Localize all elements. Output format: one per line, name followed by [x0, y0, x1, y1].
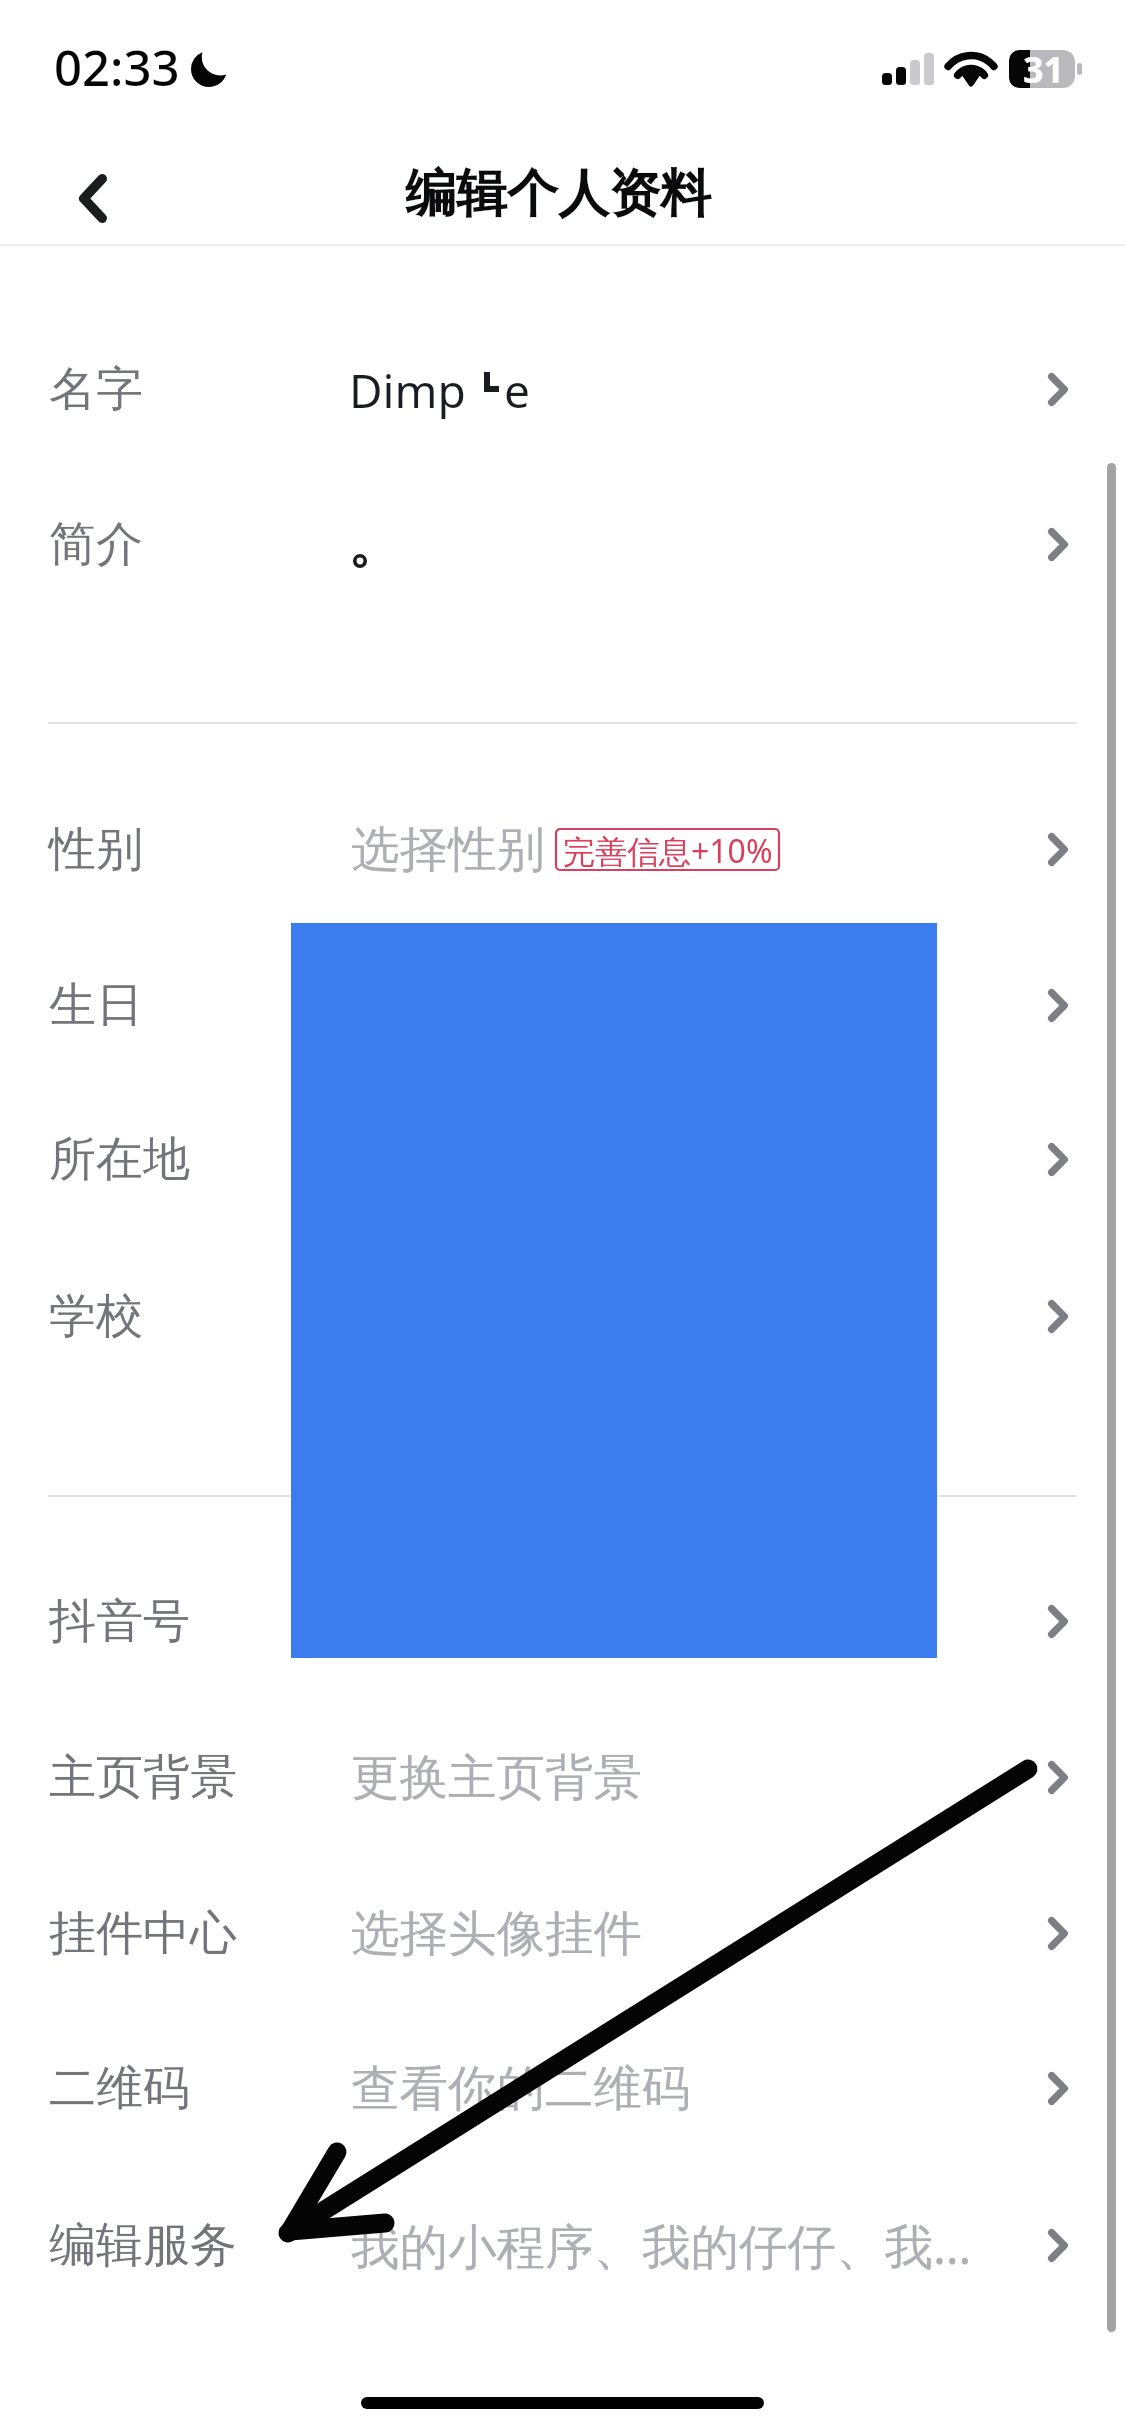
staticText: 我的小程序、我的仔仔、我… [351, 2212, 972, 2278]
staticText: 主页背景 [49, 1748, 237, 1807]
button[interactable]: 名字 [0, 321, 1125, 457]
button[interactable]: 学校 [0, 1248, 1125, 1384]
staticText: 31 [1023, 45, 1065, 83]
staticText: 02:33 [54, 34, 180, 101]
staticText: 编辑个人资料 [405, 162, 711, 226]
staticText: 完善信息+10% [563, 829, 773, 870]
button[interactable]: 挂件中心 [0, 1865, 1125, 2001]
staticText: 性别 [49, 820, 143, 879]
staticText: e [504, 359, 530, 422]
staticText: 编辑服务 [49, 2216, 237, 2275]
staticText: 生日 [49, 976, 143, 1035]
button[interactable]: 主页背景 [0, 1709, 1125, 1845]
button[interactable]: 二维码 [0, 2020, 1125, 2156]
staticText: 选择性别 [351, 819, 545, 880]
button[interactable]: 编辑服务 [0, 2177, 1125, 2313]
staticText: 挂件中心 [49, 1904, 237, 1963]
button[interactable]: Back [0, 148, 186, 248]
button[interactable]: 性别 [0, 781, 1125, 917]
staticText: 更换主页背景 [351, 1747, 642, 1808]
button[interactable]: 生日 [0, 937, 1125, 1073]
button[interactable]: 所在地 [0, 1091, 1125, 1227]
staticText: 简介 [49, 515, 143, 574]
staticText: 学校 [49, 1287, 143, 1346]
button[interactable]: 抖音号 [0, 1553, 1125, 1689]
staticText: Dimp [349, 359, 466, 422]
staticText: 选择头像挂件 [351, 1903, 642, 1964]
staticText: 二维码 [49, 2059, 190, 2118]
staticText: 名字 [49, 360, 143, 419]
staticText: 查看你的二维码 [351, 2058, 691, 2119]
button[interactable]: 简介 [0, 476, 1125, 612]
staticText: 抖音号 [49, 1592, 190, 1651]
staticText: 所在地 [49, 1130, 190, 1189]
